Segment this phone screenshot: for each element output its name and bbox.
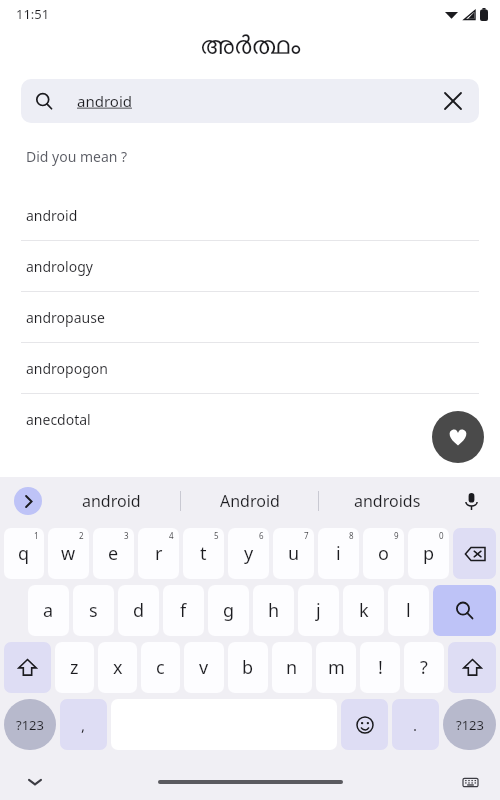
button[interactable]: android (21, 79, 479, 123)
staticText: w (61, 541, 76, 566)
button[interactable]: h (253, 585, 294, 636)
button[interactable]: Backspace (453, 528, 496, 579)
staticText: andropause (26, 308, 105, 327)
staticText: 2 (79, 530, 84, 541)
button[interactable]: p (408, 528, 449, 579)
staticText: d (133, 598, 145, 623)
button[interactable]: Shift (4, 642, 51, 693)
button[interactable]: o (363, 528, 404, 579)
staticText: android (77, 91, 431, 111)
staticText: z (70, 655, 79, 680)
button[interactable]: r (138, 528, 179, 579)
button[interactable]: Search (433, 585, 496, 636)
staticText: t (200, 541, 207, 566)
button[interactable]: y (228, 528, 269, 579)
button[interactable]: l (388, 585, 429, 636)
staticText: 0 (439, 530, 444, 541)
staticText: y (244, 541, 254, 566)
staticText: c (156, 655, 165, 680)
staticText: . (413, 715, 418, 735)
staticText: i (336, 541, 341, 566)
staticText: u (288, 541, 300, 566)
button[interactable]: Hide keyboard (22, 769, 48, 795)
staticText: anecdotal (26, 410, 91, 429)
button[interactable]: andrology (0, 241, 500, 291)
button[interactable]: q (4, 528, 44, 579)
button[interactable]: b (228, 642, 268, 693)
button[interactable]: andropause (0, 292, 500, 342)
staticText: 6 (259, 530, 264, 541)
button[interactable]: t (183, 528, 224, 579)
staticText: ?123 (16, 716, 44, 734)
staticText: o (378, 541, 389, 566)
staticText: Did you mean ? (26, 147, 128, 166)
button[interactable]: k (343, 585, 384, 636)
button[interactable]: Favourites (432, 411, 484, 463)
button[interactable]: Switch keyboard (458, 770, 482, 794)
staticText: g (223, 598, 235, 623)
staticText: f (180, 598, 187, 623)
button[interactable]: ! (360, 642, 400, 693)
button[interactable]: android (42, 477, 180, 525)
button[interactable]: . (392, 699, 439, 750)
staticText: q (18, 541, 30, 566)
staticText: 4 (169, 530, 174, 541)
staticText: s (89, 598, 98, 623)
button[interactable]: Emoji (341, 699, 388, 750)
button[interactable]: z (55, 642, 94, 693)
button[interactable]: android (0, 190, 500, 240)
staticText: a (43, 598, 54, 623)
button[interactable]: , (60, 699, 107, 750)
staticText: ?123 (456, 716, 484, 734)
button[interactable]: Expand suggestions (14, 487, 42, 515)
button[interactable]: m (316, 642, 356, 693)
button[interactable]: androids (319, 477, 456, 525)
button[interactable]: a (28, 585, 69, 636)
button[interactable]: x (98, 642, 137, 693)
button[interactable]: andropogon (0, 343, 500, 393)
button[interactable]: Shift (448, 642, 496, 693)
staticText: n (286, 655, 298, 680)
button[interactable]: ?123 (4, 699, 56, 750)
staticText: android (82, 490, 141, 512)
staticText: 3 (124, 530, 129, 541)
staticText: l (406, 598, 411, 623)
button[interactable]: ?123 (443, 699, 496, 750)
staticText: 7 (304, 530, 309, 541)
button[interactable]: ? (404, 642, 444, 693)
button[interactable]: Clear (431, 79, 475, 123)
staticText: അർത്ഥം (0, 34, 500, 59)
button[interactable]: j (298, 585, 339, 636)
button[interactable]: Voice input (456, 486, 486, 516)
button[interactable]: f (163, 585, 204, 636)
button[interactable]: s (73, 585, 114, 636)
staticText: , (81, 715, 86, 735)
staticText: x (113, 655, 123, 680)
staticText: b (242, 655, 254, 680)
staticText: Android (220, 490, 280, 512)
button[interactable]: e (93, 528, 134, 579)
staticText: ? (420, 655, 428, 680)
staticText: andrology (26, 257, 93, 276)
staticText: androids (354, 490, 421, 512)
staticText: j (316, 598, 321, 623)
staticText: e (108, 541, 119, 566)
staticText: r (155, 541, 163, 566)
button[interactable]: g (208, 585, 249, 636)
button[interactable]: u (273, 528, 314, 579)
button[interactable]: d (118, 585, 159, 636)
button[interactable]: v (184, 642, 224, 693)
button[interactable]: n (272, 642, 312, 693)
button[interactable]: c (141, 642, 180, 693)
staticText: andropogon (26, 359, 108, 378)
button[interactable]: w (48, 528, 89, 579)
button[interactable]: anecdotal (0, 394, 500, 444)
staticText: 8 (349, 530, 354, 541)
staticText: 1 (34, 530, 39, 541)
staticText: p (423, 541, 435, 566)
button[interactable]: Android (181, 477, 318, 525)
staticText: 9 (394, 530, 399, 541)
staticText: v (199, 655, 209, 680)
button[interactable]: i (318, 528, 359, 579)
